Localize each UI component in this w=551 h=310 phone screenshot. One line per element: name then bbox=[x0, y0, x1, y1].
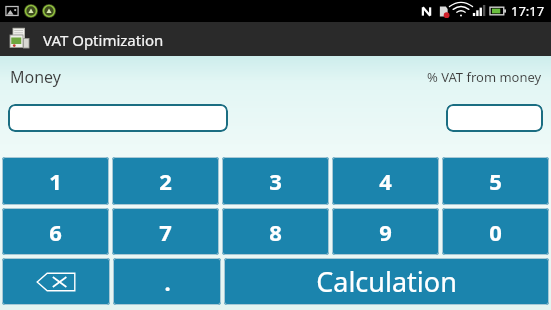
staticText: VAT Optimization bbox=[43, 30, 164, 50]
button[interactable]: Calculation bbox=[224, 258, 549, 305]
staticText: 3 bbox=[269, 166, 282, 196]
staticText: 8 bbox=[269, 217, 282, 247]
button[interactable]: 1 bbox=[2, 157, 109, 205]
staticText: 0 bbox=[489, 217, 502, 247]
staticText: 7 bbox=[159, 217, 172, 247]
staticText: 2 bbox=[159, 166, 172, 196]
staticText: Calculation bbox=[316, 263, 457, 300]
staticText: 9 bbox=[379, 217, 392, 247]
button[interactable]: . bbox=[113, 258, 221, 305]
button[interactable]: 9 bbox=[332, 208, 439, 255]
button[interactable]: Backspace bbox=[2, 258, 110, 305]
staticText: 6 bbox=[49, 217, 62, 247]
staticText: 4 bbox=[379, 166, 392, 196]
button[interactable]: 2 bbox=[112, 157, 219, 205]
staticText: Money bbox=[10, 66, 61, 88]
button[interactable]: 7 bbox=[112, 208, 219, 255]
button[interactable]: 3 bbox=[222, 157, 329, 205]
staticText: 5 bbox=[489, 166, 502, 196]
button[interactable]: 8 bbox=[222, 208, 329, 255]
staticText: 17:17 bbox=[511, 2, 545, 20]
staticText: . bbox=[164, 267, 171, 297]
button[interactable]: 4 bbox=[332, 157, 439, 205]
button[interactable]: 6 bbox=[2, 208, 109, 255]
button[interactable]: 0 bbox=[442, 208, 549, 255]
staticText: 1 bbox=[49, 166, 62, 196]
button[interactable] bbox=[8, 104, 228, 132]
staticText: % VAT from money bbox=[427, 68, 542, 86]
button[interactable]: 5 bbox=[442, 157, 549, 205]
button[interactable] bbox=[446, 104, 543, 132]
